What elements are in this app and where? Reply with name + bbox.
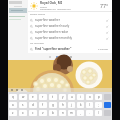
- staticText: On this page: [30, 42, 44, 45]
- staticText: x: [22, 111, 24, 115]
- button[interactable]: m: [68, 110, 75, 116]
- staticText: Recent Search: [30, 13, 46, 16]
- staticText: Sunny: [40, 5, 47, 8]
- staticText: b: [52, 111, 54, 115]
- button[interactable]: superfine weather monthly: [28, 35, 112, 41]
- staticText: c: [32, 111, 34, 115]
- button[interactable]: c: [29, 110, 37, 116]
- staticText: i: [80, 95, 81, 99]
- button[interactable]: superfine weather: [28, 17, 112, 23]
- button[interactable]: h: [59, 102, 66, 108]
- staticText: m: [70, 111, 73, 115]
- button[interactable]: d: [29, 102, 37, 108]
- button[interactable]: superfine weather hourly: [28, 23, 112, 29]
- staticText: a: [12, 103, 14, 107]
- button[interactable]: .: [86, 110, 93, 116]
- staticText: w: [22, 95, 25, 99]
- staticText: q: [12, 95, 14, 99]
- staticText: ,: [80, 111, 81, 115]
- staticText: Find "superfine weather": [35, 47, 72, 51]
- button[interactable]: /: [95, 110, 102, 116]
- staticText: s: [22, 103, 24, 107]
- button[interactable]: tool 2: [16, 89, 18, 91]
- button[interactable]: Search: [104, 102, 111, 108]
- button[interactable]: t: [49, 94, 57, 100]
- staticText: t: [52, 95, 54, 99]
- staticText: 3 matches: [98, 48, 109, 51]
- button[interactable]: e: [29, 94, 37, 100]
- button[interactable]: p: [95, 94, 102, 100]
- staticText: superfine weather hourly: [35, 24, 70, 28]
- staticText: k: [80, 103, 82, 107]
- staticText: h: [62, 103, 64, 107]
- button[interactable]: a: [9, 102, 17, 108]
- staticText: superfine weather: [35, 18, 60, 22]
- button[interactable]: j: [68, 102, 75, 108]
- staticText: /: [98, 111, 100, 115]
- staticText: superfine weather monthly: [35, 36, 72, 40]
- staticText: .: [89, 111, 90, 115]
- button[interactable]: o: [86, 94, 93, 100]
- button[interactable]: s: [19, 102, 27, 108]
- button[interactable]: r: [39, 94, 47, 100]
- staticText: n: [62, 111, 64, 115]
- staticText: j: [71, 103, 72, 107]
- staticText: e: [32, 95, 34, 99]
- staticText: ;: [98, 103, 99, 107]
- button[interactable]: q: [9, 94, 17, 100]
- button[interactable]: i: [77, 94, 84, 100]
- button[interactable]: ;: [95, 102, 102, 108]
- button[interactable]: k: [77, 102, 84, 108]
- button[interactable]: z: [9, 110, 17, 116]
- button[interactable]: f: [39, 102, 47, 108]
- staticText: y: [62, 95, 64, 99]
- button[interactable]: superfine weather radar: [28, 29, 112, 35]
- staticText: g: [52, 103, 54, 107]
- staticText: Royal Oak, MI: [40, 1, 62, 5]
- button[interactable]: y: [59, 94, 66, 100]
- staticText: u: [71, 95, 73, 99]
- button[interactable]: page 2: [56, 56, 58, 58]
- staticText: 77°: [100, 2, 109, 9]
- button[interactable]: u: [68, 94, 75, 100]
- staticText: l: [89, 103, 90, 107]
- button[interactable]: w: [19, 94, 27, 100]
- button[interactable]: b: [49, 110, 57, 116]
- button[interactable]: n: [59, 110, 66, 116]
- staticText: superfine weather radar: [35, 30, 68, 34]
- button[interactable]: Royal Oak, MI: [28, 0, 112, 11]
- staticText: d: [32, 103, 34, 107]
- button[interactable]: v: [39, 110, 47, 116]
- staticText: z: [12, 111, 14, 115]
- button[interactable]: x: [19, 110, 27, 116]
- button[interactable]: ,: [77, 110, 84, 116]
- staticText: r: [42, 95, 44, 99]
- button[interactable]: Search field: [9, 8, 27, 13]
- staticText: p: [98, 95, 100, 99]
- staticText: f: [42, 103, 44, 107]
- staticText: Precipitation 4% Humidity 62%: [40, 8, 71, 11]
- button[interactable]: g: [49, 102, 57, 108]
- button[interactable]: Find "superfine weather": [28, 46, 112, 52]
- staticText: v: [42, 111, 44, 115]
- staticText: o: [89, 95, 91, 99]
- button[interactable]: l: [86, 102, 93, 108]
